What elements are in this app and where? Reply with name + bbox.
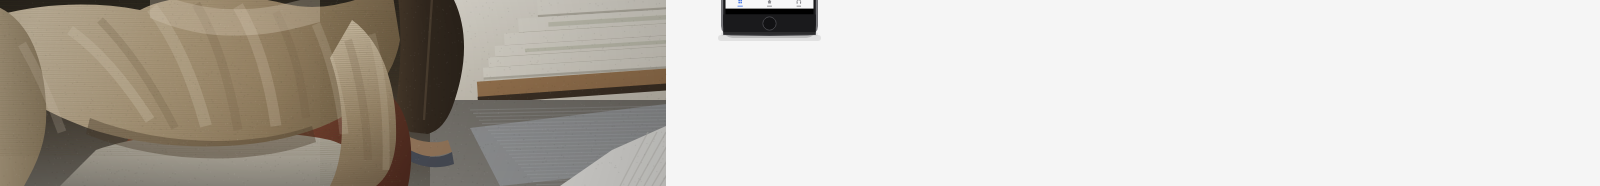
button[interactable]: App preview on phone	[0, 0, 120, 48]
button[interactable]	[0, 0, 666, 186]
